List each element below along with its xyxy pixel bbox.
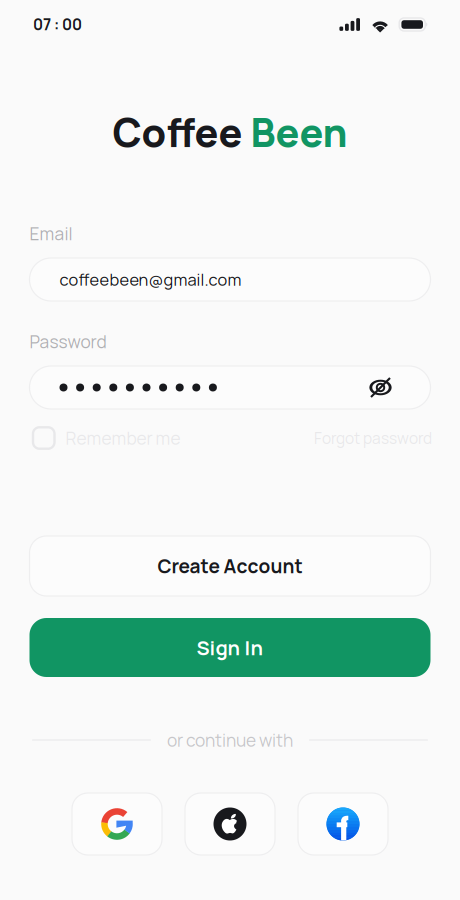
button[interactable]: Continue with Google <box>72 793 162 855</box>
staticText: 07 : 00 <box>33 14 82 35</box>
staticText: Password <box>29 330 106 353</box>
button[interactable]: Show password <box>370 377 390 397</box>
staticText: or continue with <box>167 728 293 752</box>
staticText: Coffee <box>112 105 250 159</box>
button[interactable]: Forgot password <box>314 427 432 448</box>
staticText: Been <box>250 105 347 159</box>
staticText: Email <box>29 222 72 245</box>
button[interactable]: Sign In <box>29 618 430 677</box>
staticText: coffeebeen@gmail.com <box>59 268 241 291</box>
button[interactable]: Remember me <box>33 426 180 450</box>
staticText: Sign In <box>196 634 263 661</box>
staticText: Forgot password <box>314 427 432 448</box>
staticText: Remember me <box>65 426 180 450</box>
staticText: Create Account <box>157 553 302 579</box>
button[interactable]: Continue with Facebook <box>298 793 388 855</box>
button[interactable]: Create Account <box>29 536 430 596</box>
button[interactable]: Continue with Apple <box>185 793 275 855</box>
